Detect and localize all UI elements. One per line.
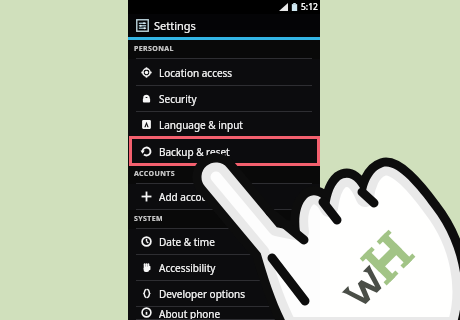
staticText: Date & time: [159, 235, 215, 249]
staticText: ACCOUNTS: [134, 169, 176, 179]
staticText: About phone: [159, 307, 221, 320]
button[interactable]: Add account: [128, 184, 320, 210]
button[interactable]: Security: [128, 86, 320, 112]
staticText: Add account: [159, 190, 218, 204]
button[interactable]: Accessibility: [128, 255, 320, 281]
button[interactable]: Developer options: [128, 281, 320, 307]
staticText: Developer options: [159, 287, 246, 301]
button[interactable]: Language & input: [128, 112, 320, 138]
staticText: PERSONAL: [134, 44, 174, 54]
button[interactable]: About phone: [128, 307, 320, 320]
staticText: Language & input: [159, 118, 243, 132]
button[interactable]: Backup & reset: [128, 138, 320, 165]
staticText: Location access: [159, 66, 233, 80]
button[interactable]: Date & time: [128, 229, 320, 255]
staticText: Security: [159, 92, 197, 106]
button[interactable]: Settings: [128, 14, 320, 37]
staticText: 5:12: [301, 1, 318, 13]
staticText: SYSTEM: [134, 214, 164, 224]
staticText: Settings: [154, 18, 196, 33]
button[interactable]: Location access: [128, 59, 320, 86]
staticText: Backup & reset: [159, 145, 230, 159]
staticText: Accessibility: [159, 261, 216, 275]
